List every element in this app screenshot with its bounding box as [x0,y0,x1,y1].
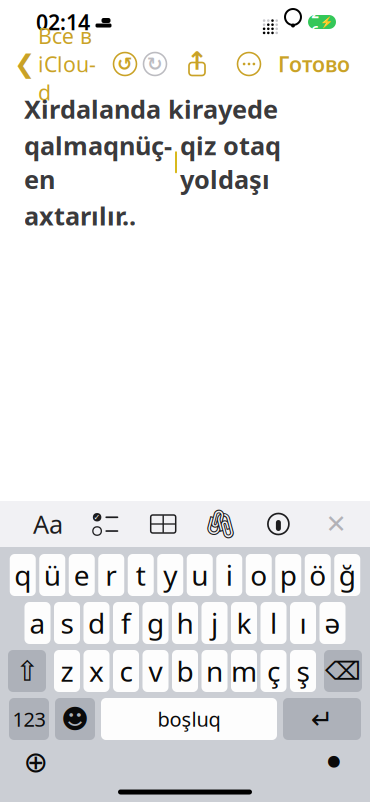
button[interactable]: Table [145,504,181,544]
staticText: ⏺ [327,750,340,774]
button[interactable]: v [142,650,168,692]
staticText: u [191,556,208,594]
staticText: ğ [339,556,356,594]
button[interactable]: y [157,554,183,596]
button[interactable]: x [83,650,109,692]
staticText: ✕ [325,510,346,538]
button[interactable]: Share [182,50,212,78]
button[interactable]: j [201,602,227,644]
button[interactable]: Text format [30,504,66,544]
staticText: Готово [278,50,350,78]
button[interactable]: Redo [140,49,170,79]
staticText: l [270,604,277,642]
button[interactable]: u [187,554,213,596]
button[interactable]: Dictate [314,746,354,778]
button[interactable]: ı [290,602,316,644]
button[interactable]: f [113,602,139,644]
staticText: h [176,604,193,642]
staticText: 02:14 [36,8,90,36]
staticText: c [119,652,132,690]
button[interactable]: Shift [8,650,46,692]
staticText: Xirdalanda kirayede [24,92,278,126]
button[interactable]: g [142,602,168,644]
staticText: d [88,604,105,642]
button[interactable]: boşluq [101,698,277,740]
button[interactable]: z [54,650,80,692]
staticText: z [60,652,73,690]
button[interactable]: d [83,602,109,644]
button[interactable]: Checklist [88,504,124,544]
staticText: s [60,604,73,642]
button[interactable]: q [10,554,36,596]
button[interactable]: Switch keyboard [16,746,56,778]
button[interactable]: s [54,602,80,644]
button[interactable]: ç [260,650,286,692]
staticText: e [74,556,90,594]
staticText: qiz otaq yoldaşı [180,129,281,196]
button[interactable]: Emoji [55,698,95,740]
staticText: ⌫ [325,657,361,685]
button[interactable]: ❮ [8,14,102,113]
staticText: ü [44,556,61,594]
staticText: ⇧ [15,655,38,687]
staticText: j [211,604,218,642]
button[interactable]: Готово [272,43,356,85]
button[interactable]: Attach file [203,504,239,544]
staticText: r [105,556,117,594]
staticText: boşluq [157,706,220,732]
button[interactable]: Delete [324,650,362,692]
button[interactable]: Numbers [9,698,49,740]
button[interactable]: Close keyboard [318,504,354,544]
button[interactable]: c [113,650,139,692]
staticText: ı [299,604,306,642]
staticText: k [236,604,251,642]
staticText: ç [267,652,280,690]
button[interactable]: l [260,602,286,644]
staticText: ⚡ [320,16,333,28]
staticText: ↵ [311,704,333,734]
button[interactable]: ü [39,554,65,596]
staticText: i [226,556,233,594]
staticText: ⊕ [23,745,48,779]
button[interactable]: i [216,554,242,596]
staticText: v [148,652,162,690]
button[interactable]: ə [319,602,345,644]
staticText: ↺ [117,53,133,75]
button[interactable]: a [24,602,50,644]
button[interactable]: p [275,554,301,596]
staticText: n [206,652,223,690]
button[interactable]: k [231,602,257,644]
staticText: m [231,652,257,690]
staticText: 26 [311,4,319,40]
staticText: ö [309,556,326,594]
staticText: Все в iCloud [38,21,96,106]
staticText: y [163,556,177,594]
staticText: b [176,652,193,690]
staticText: x [89,652,104,690]
button[interactable]: More [234,49,264,79]
button[interactable]: t [128,554,154,596]
button[interactable]: ö [305,554,331,596]
button[interactable]: m [231,650,257,692]
staticText: 123 [12,706,45,732]
button[interactable]: e [69,554,95,596]
button[interactable]: ş [290,650,316,692]
button[interactable]: o [246,554,272,596]
staticText: ✓ [94,513,101,522]
staticText: a [29,604,45,642]
button[interactable]: h [172,602,198,644]
button[interactable]: r [98,554,124,596]
button[interactable]: Return [283,698,361,740]
button[interactable]: b [172,650,198,692]
button[interactable]: n [201,650,227,692]
staticText: p [280,556,297,594]
button[interactable]: Undo [110,49,140,79]
staticText: ↑ [186,47,207,75]
button[interactable]: ğ [334,554,360,596]
staticText: 🖇 [203,508,239,540]
staticText: Aa [33,507,63,541]
button[interactable]: Markup [260,504,296,544]
staticText: qalmaqnüçen [24,129,172,196]
staticText: g [147,604,164,642]
staticText: f [121,604,131,642]
